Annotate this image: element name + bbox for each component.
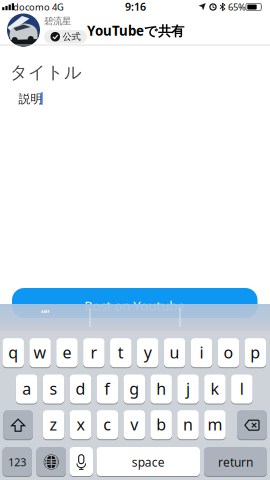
button[interactable]: c	[97, 410, 118, 440]
button[interactable]: f	[97, 374, 118, 404]
button[interactable]: 説明	[10, 92, 260, 106]
button[interactable]: h	[150, 374, 172, 404]
button[interactable]: “”	[2, 301, 88, 326]
staticText: q	[8, 342, 18, 363]
button[interactable]: i	[191, 338, 212, 368]
button[interactable]: n	[177, 410, 199, 440]
button[interactable]: t	[110, 338, 131, 368]
button[interactable]: s	[43, 374, 64, 404]
staticText: g	[129, 378, 139, 399]
button[interactable]: Next keyboard	[36, 447, 66, 477]
staticText: b	[156, 414, 166, 435]
staticText: w	[34, 342, 47, 363]
staticText: e	[62, 342, 71, 363]
staticText: m	[207, 414, 222, 435]
staticText: 9:16	[125, 0, 146, 14]
staticText: v	[130, 414, 138, 435]
staticText: s	[49, 378, 57, 399]
staticText: x	[76, 414, 84, 435]
button[interactable]: タイトル	[10, 62, 260, 83]
staticText: p	[250, 342, 260, 363]
staticText: 4G	[52, 1, 64, 13]
staticText: 123	[8, 455, 26, 469]
button[interactable]: Post on Youtube	[12, 288, 257, 318]
button[interactable]: Dictate	[69, 447, 93, 477]
button[interactable]: o	[218, 338, 239, 368]
button[interactable]: u	[164, 338, 185, 368]
staticText: l	[240, 378, 244, 399]
staticText: h	[156, 378, 166, 399]
button[interactable]: q	[2, 338, 24, 368]
button[interactable]: p	[244, 338, 266, 368]
button[interactable]: g	[123, 374, 145, 404]
staticText: “”	[41, 307, 49, 321]
button[interactable]: v	[123, 410, 145, 440]
staticText: n	[183, 414, 193, 435]
staticText: return	[218, 454, 253, 470]
button[interactable]: w	[29, 338, 51, 368]
button[interactable]: b	[150, 410, 172, 440]
staticText: i	[199, 342, 203, 363]
staticText: c	[103, 414, 111, 435]
button[interactable]: a	[16, 374, 37, 404]
button[interactable]: y	[137, 338, 158, 368]
button[interactable]: m	[204, 410, 226, 440]
button[interactable]: k	[204, 374, 226, 404]
button[interactable]: r	[83, 338, 105, 368]
staticText: 説明	[18, 92, 42, 106]
button[interactable]: space	[96, 447, 200, 477]
staticText: u	[170, 342, 180, 363]
staticText: r	[90, 342, 97, 363]
staticText: 碧流星	[44, 15, 71, 27]
staticText: o	[223, 342, 233, 363]
staticText: k	[210, 378, 219, 399]
staticText: Post on Youtube	[84, 297, 185, 314]
staticText: t	[118, 342, 124, 363]
button[interactable]: x	[70, 410, 91, 440]
button[interactable]: l	[231, 374, 253, 404]
staticText: d	[75, 378, 85, 399]
button[interactable]: j	[177, 374, 199, 404]
staticText: タイトル	[10, 62, 82, 83]
staticText: space	[132, 454, 165, 470]
button[interactable]: Delete	[237, 410, 267, 440]
button[interactable]: return	[204, 447, 267, 477]
button[interactable]: 碧流星	[7, 13, 87, 46]
staticText: a	[22, 378, 31, 399]
staticText: 公式	[62, 31, 80, 42]
staticText: j	[186, 378, 190, 399]
button[interactable]: 123	[2, 447, 32, 477]
button[interactable]: z	[43, 410, 64, 440]
button[interactable]: d	[70, 374, 91, 404]
button[interactable]: Shift	[3, 410, 33, 440]
staticText: f	[104, 378, 110, 399]
staticText: 65%	[228, 1, 246, 13]
staticText: docomo	[13, 1, 50, 13]
button[interactable]: e	[56, 338, 78, 368]
staticText: z	[49, 414, 57, 435]
staticText: y	[144, 342, 152, 363]
staticText: YouTubeで共有	[87, 22, 184, 39]
